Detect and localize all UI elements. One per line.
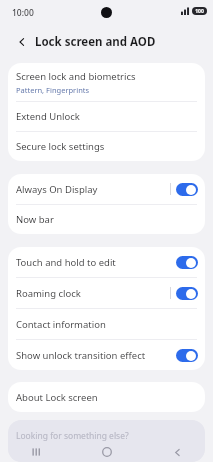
button[interactable]: About Lock screen	[8, 382, 205, 412]
button[interactable]: Touch and hold to edit	[8, 247, 205, 277]
button[interactable]: Roaming clock	[8, 278, 205, 308]
staticText: Looking for something else?	[16, 430, 129, 442]
staticText: 100	[195, 8, 204, 15]
staticText: 10:00	[12, 7, 34, 19]
staticText: Lock screen and AOD	[35, 34, 156, 50]
button[interactable]: Secure lock settings	[8, 132, 205, 161]
staticText: Contact information	[16, 318, 106, 331]
button[interactable]: Recent apps	[0, 442, 71, 462]
button[interactable]: Always On Display	[8, 174, 205, 204]
button[interactable]: Always On Display toggle, on	[176, 183, 198, 196]
staticText: Roaming clock	[16, 287, 81, 300]
button[interactable]: Show unlock transition effect	[8, 340, 205, 370]
staticText: Show unlock transition effect	[16, 349, 146, 362]
button[interactable]: Show unlock transition effect toggle, on	[176, 349, 198, 362]
button[interactable]: Contact information	[8, 309, 205, 339]
button[interactable]: Home	[71, 442, 142, 462]
button[interactable]: Screen lock and biometrics	[8, 63, 205, 101]
staticText: Always On Display	[16, 183, 98, 196]
button[interactable]: Back	[13, 33, 31, 51]
button[interactable]: Now bar	[8, 205, 205, 234]
staticText: Screen lock and biometrics	[16, 70, 136, 83]
button[interactable]: Roaming clock toggle, on	[176, 287, 198, 300]
button[interactable]: Extend Unlock	[8, 102, 205, 131]
button[interactable]: Looking for something else?	[8, 420, 205, 462]
staticText: About Lock screen	[16, 391, 98, 404]
button[interactable]: Back	[142, 442, 213, 462]
staticText: Now bar	[16, 213, 54, 226]
staticText: Secure lock settings	[16, 140, 105, 153]
staticText: Touch and hold to edit	[16, 256, 116, 269]
button[interactable]: Touch and hold to edit toggle, on	[176, 256, 198, 269]
staticText: Pattern, Fingerprints	[16, 85, 90, 95]
staticText: Extend Unlock	[16, 110, 80, 123]
